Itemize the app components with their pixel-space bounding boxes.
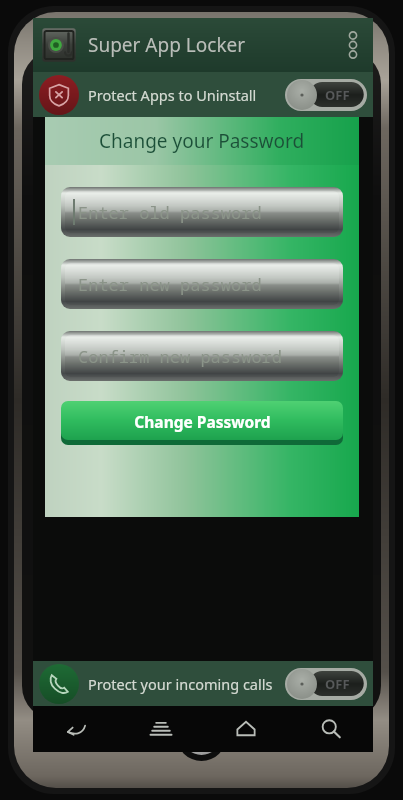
button[interactable]: More options bbox=[333, 18, 373, 72]
button[interactable]: Protect your incoming calls bbox=[33, 661, 373, 706]
button[interactable]: Enter new password bbox=[61, 259, 343, 309]
button[interactable]: Toggle off bbox=[285, 667, 367, 701]
button[interactable]: Enter old password bbox=[61, 187, 343, 237]
button[interactable]: Search bbox=[288, 706, 373, 752]
button[interactable]: Confirm new password bbox=[61, 331, 343, 381]
staticText: Change Password bbox=[134, 411, 271, 432]
staticText: Protect Apps to Uninstall bbox=[88, 85, 257, 105]
staticText: Confirm new password bbox=[78, 345, 282, 368]
button[interactable]: Protect Apps to Uninstall bbox=[33, 72, 373, 117]
staticText: Enter new password bbox=[78, 273, 262, 296]
button[interactable]: Change Password bbox=[61, 401, 343, 445]
button[interactable]: Menu bbox=[118, 706, 203, 752]
button[interactable]: Home bbox=[203, 706, 288, 752]
staticText: Enter old password bbox=[78, 201, 262, 224]
button[interactable]: Toggle off bbox=[285, 78, 367, 112]
staticText: OFF bbox=[325, 86, 350, 104]
staticText: Super App Locker bbox=[88, 32, 246, 58]
staticText: Protect your incoming calls bbox=[88, 674, 273, 694]
button[interactable] bbox=[40, 26, 78, 64]
button[interactable]: Back bbox=[33, 706, 118, 752]
staticText: OFF bbox=[325, 675, 350, 693]
staticText: Change your Password bbox=[99, 128, 305, 154]
